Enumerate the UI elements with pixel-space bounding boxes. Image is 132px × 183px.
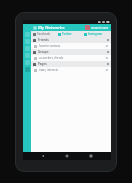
staticText: Twitter	[62, 32, 72, 36]
staticText: My Networks	[38, 25, 65, 31]
staticText: Pages	[38, 62, 47, 66]
button[interactable]: Rail item 2	[25, 39, 30, 44]
staticText: favorite contacts	[39, 44, 61, 48]
button[interactable]: news, interests	[31, 67, 111, 73]
button[interactable]: Twitter	[56, 31, 82, 37]
button[interactable]: Home	[63, 152, 71, 160]
button[interactable]: Facebook	[31, 31, 56, 37]
button[interactable]: co-workers, friends	[31, 55, 111, 61]
button[interactable]: Pages	[31, 61, 111, 67]
button[interactable]: Rail item 4	[25, 53, 30, 58]
button[interactable]: Rail item 3	[25, 46, 30, 51]
button[interactable]: Recent apps	[87, 152, 95, 160]
button[interactable]: Back	[39, 152, 47, 160]
staticText: co-workers, friends	[39, 56, 64, 60]
button[interactable]: favorite contacts	[31, 43, 111, 49]
button[interactable]: Groups	[31, 49, 111, 55]
button[interactable]: Friends	[31, 37, 111, 43]
button[interactable]: Instagram	[82, 31, 108, 37]
button[interactable]: Rail item 1	[25, 32, 30, 37]
button[interactable]: Navigate up	[31, 24, 38, 31]
staticText: Instagram	[88, 32, 103, 36]
staticText: Facebook	[37, 32, 51, 36]
staticText: account name	[91, 26, 109, 30]
button[interactable]: Rail item 5	[25, 60, 30, 65]
staticText: news, interests	[39, 68, 58, 72]
staticText: Groups	[38, 50, 49, 54]
button[interactable]: Account	[85, 25, 90, 30]
staticText: Friends	[38, 38, 49, 42]
